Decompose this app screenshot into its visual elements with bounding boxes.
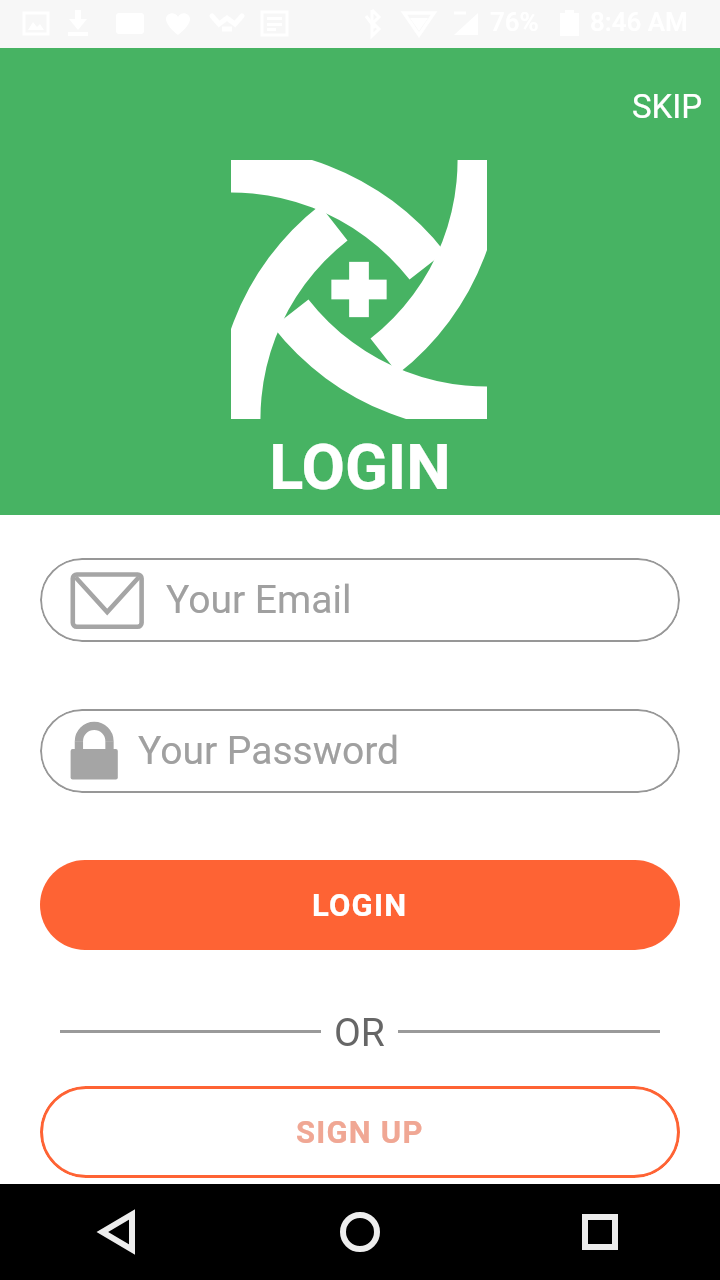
staticText: Your Email [166,577,352,623]
button[interactable]: Recent apps [552,1184,648,1280]
button[interactable]: Back [72,1184,168,1280]
staticText: 76% [490,7,539,37]
staticText: SIGN UP [296,1114,424,1150]
button[interactable]: SKIP [614,77,720,136]
staticText: LOGIN [0,431,720,505]
staticText: Your Password [138,728,400,774]
staticText: 8:46 AM [590,7,688,37]
button[interactable]: Your Email [40,558,680,642]
button[interactable]: LOGIN [40,860,680,950]
button[interactable]: SIGN UP [40,1086,680,1178]
staticText: LOGIN [312,887,408,923]
staticText: OR [334,1010,385,1052]
button[interactable]: Home [312,1184,408,1280]
button[interactable]: Your Password [40,709,680,793]
